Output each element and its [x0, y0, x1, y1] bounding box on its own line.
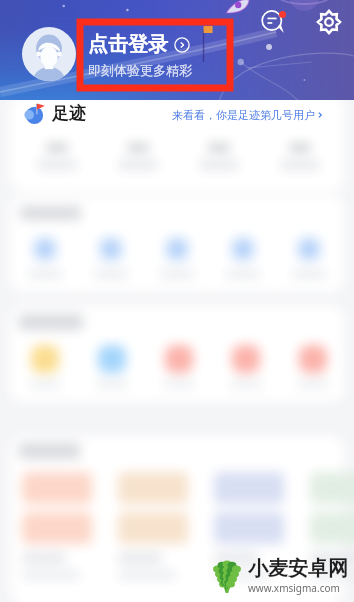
staticText: 点击登录 — [88, 32, 168, 57]
staticText: 小麦安卓网 — [248, 556, 348, 581]
staticText: 来看看，你是足迹第几号用户 — [172, 108, 315, 122]
staticText: 即刻体验更多精彩 — [88, 62, 192, 78]
button[interactable]: Settings — [312, 5, 346, 39]
staticText: 足迹 — [52, 103, 86, 124]
button[interactable]: 足迹 — [22, 101, 86, 125]
button[interactable]: Messages — [256, 5, 290, 39]
button[interactable]: 来看看，你是足迹第几号用户 — [172, 108, 325, 122]
staticText: www.xmsigma.com — [248, 581, 340, 595]
button[interactable]: Avatar — [22, 27, 76, 81]
button[interactable]: 点击登录 — [88, 32, 192, 78]
